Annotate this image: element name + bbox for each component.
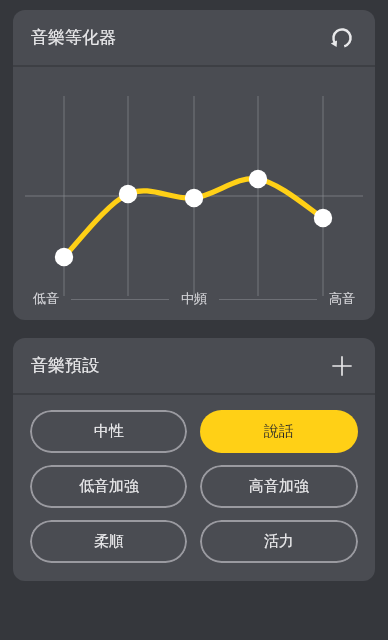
- staticText: 活力: [264, 532, 294, 551]
- button[interactable]: 說話: [200, 410, 358, 453]
- staticText: 中頻: [181, 290, 207, 306]
- button[interactable]: 柔順: [30, 520, 187, 563]
- staticText: 高音加強: [249, 477, 309, 496]
- staticText: 高音: [329, 290, 355, 306]
- button[interactable]: 低音加強: [30, 465, 187, 508]
- staticText: 柔順: [94, 532, 124, 551]
- button[interactable]: 高音加強: [200, 465, 358, 508]
- staticText: 低音: [33, 290, 59, 306]
- staticText: 音樂預設: [31, 355, 99, 376]
- staticText: 說話: [264, 422, 294, 441]
- button[interactable]: Reset equalizer: [325, 21, 359, 55]
- button[interactable]: 中性: [30, 410, 187, 453]
- staticText: 低音加強: [79, 477, 139, 496]
- staticText: 中性: [94, 422, 124, 441]
- staticText: 音樂等化器: [31, 27, 116, 48]
- button[interactable]: Add preset: [325, 349, 359, 383]
- button[interactable]: 活力: [200, 520, 358, 563]
